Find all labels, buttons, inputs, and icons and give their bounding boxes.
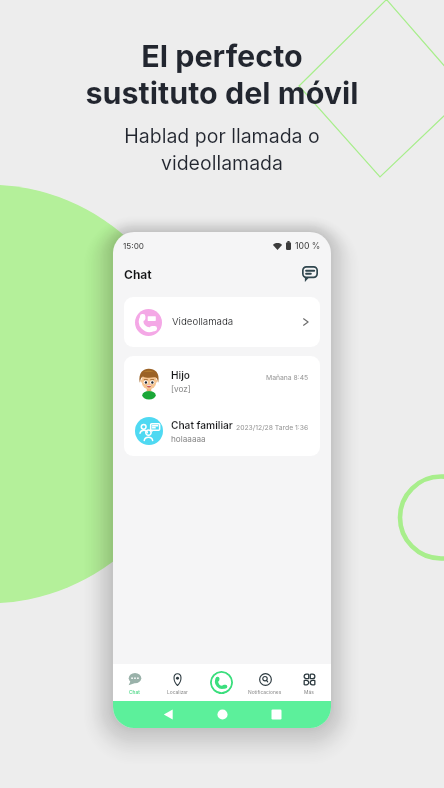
staticText: 15:00 bbox=[123, 241, 145, 251]
button[interactable]: Hijo bbox=[135, 356, 309, 406]
staticText: El perfecto sustituto del móvil bbox=[85, 37, 359, 112]
staticText: Hijo bbox=[171, 369, 190, 381]
staticText: Chat familiar bbox=[171, 419, 233, 431]
staticText: 2023/12/28 Tarde 1:36 bbox=[236, 423, 309, 431]
button[interactable]: Localizar bbox=[156, 671, 199, 695]
staticText: Videollamada bbox=[172, 316, 234, 328]
button[interactable]: Call bbox=[210, 671, 233, 694]
staticText: Chat bbox=[124, 267, 152, 282]
staticText: Más bbox=[304, 689, 314, 695]
button[interactable]: Más bbox=[287, 671, 331, 695]
staticText: Localizar bbox=[167, 689, 188, 695]
staticText: [voz] bbox=[171, 384, 191, 394]
button[interactable]: New chat bbox=[298, 262, 322, 286]
staticText: Chat bbox=[129, 689, 140, 695]
staticText: Hablad por llamada o videollamada bbox=[124, 124, 320, 175]
button[interactable]: Notificaciones bbox=[243, 671, 287, 695]
staticText: Notificaciones bbox=[248, 689, 282, 695]
button[interactable]: Videollamada bbox=[124, 297, 320, 347]
staticText: holaaaaa bbox=[171, 434, 206, 444]
button[interactable]: Chat bbox=[113, 670, 156, 695]
button[interactable]: Chat familiar bbox=[135, 406, 309, 456]
staticText: Mañana 8:45 bbox=[266, 373, 309, 381]
staticText: 100 % bbox=[295, 241, 321, 251]
